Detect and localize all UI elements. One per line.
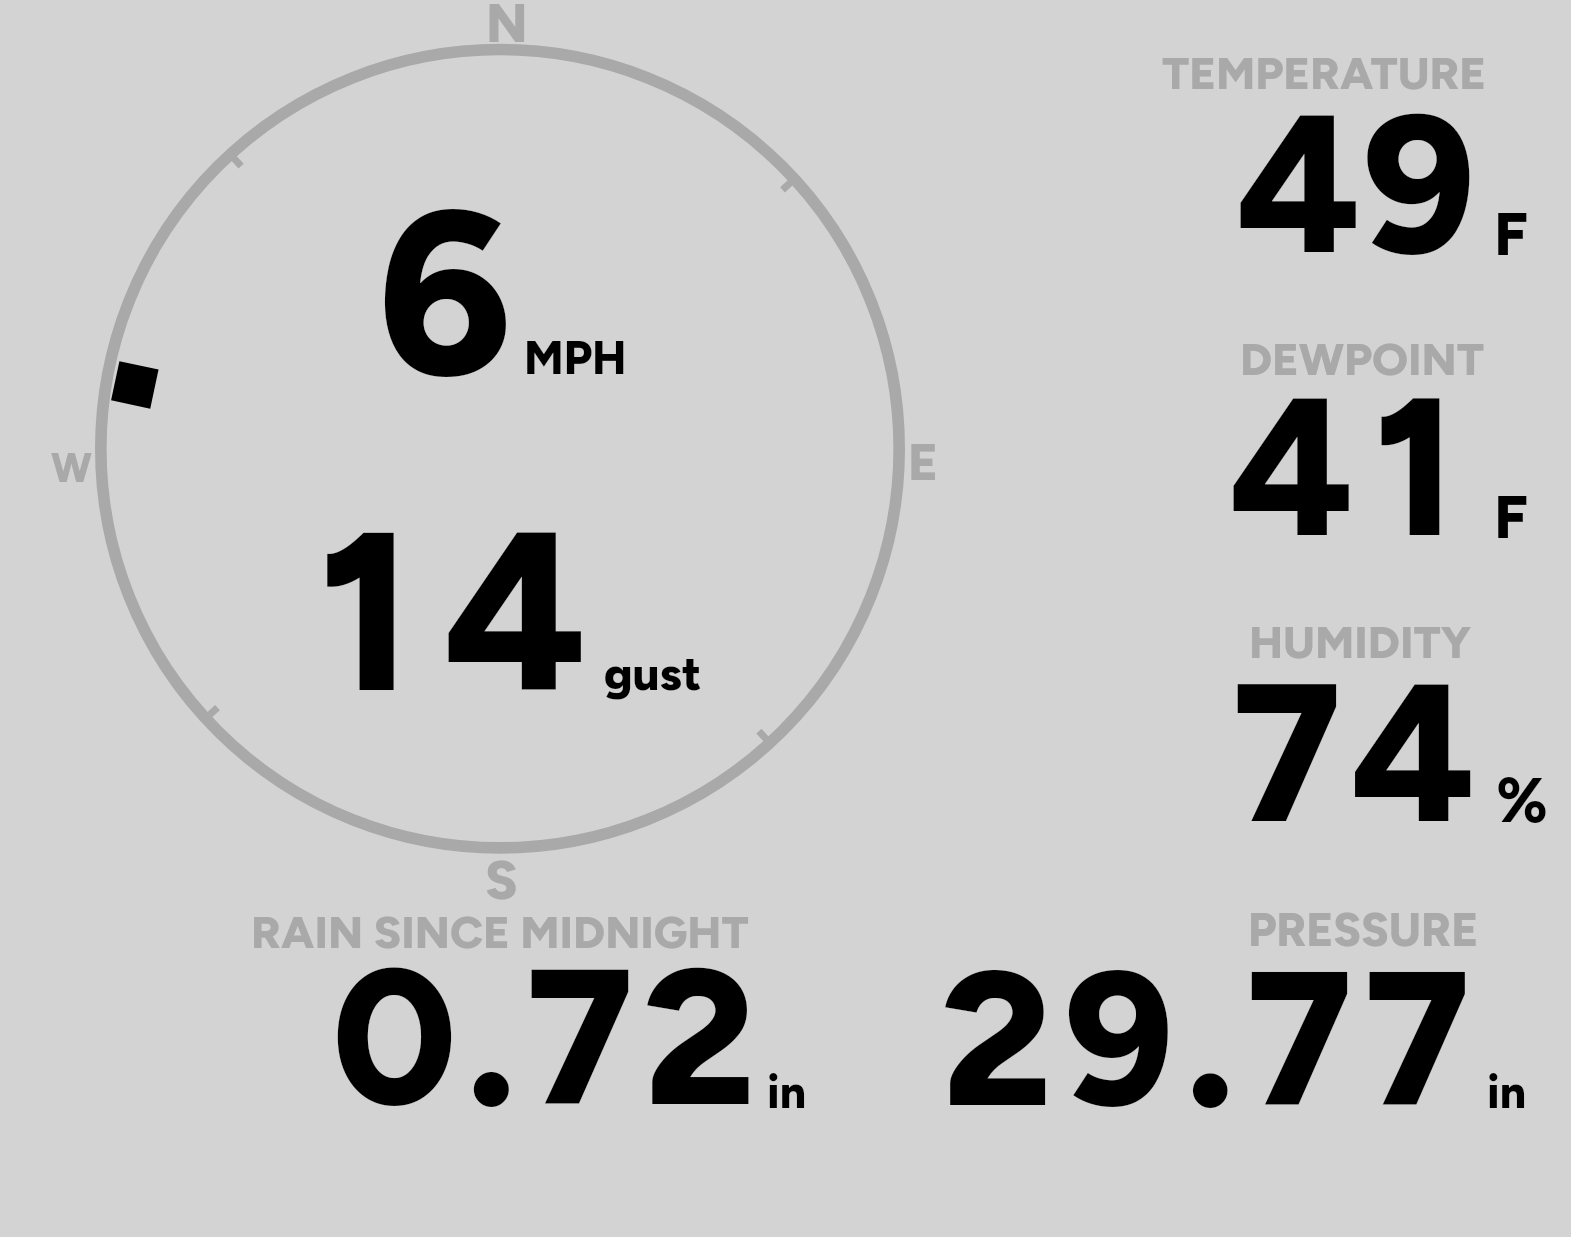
staticText: E [908,432,938,493]
staticText: F [1494,197,1529,270]
staticText: 49 [1237,67,1476,301]
staticText: DEWPOINT [1240,332,1485,387]
staticText: 41 [1230,350,1476,584]
staticText: N [486,0,528,56]
button[interactable]: RAIN SINCE MIDNIGHT 0.72 inches [230,890,830,1130]
button[interactable]: HUMIDITY 74 % [1130,600,1571,900]
staticText: MPH [524,330,627,385]
staticText: HUMIDITY [1249,615,1471,670]
staticText: TEMPERATURE [1162,46,1487,101]
button[interactable]: Wind speed and direction compass [24,0,984,900]
staticText: % [1496,762,1548,838]
staticText: gust [604,645,702,701]
staticText: 14 [318,477,619,746]
staticText: RAIN SINCE MIDNIGHT [251,905,749,960]
staticText: in [767,1064,807,1119]
staticText: S [485,848,518,913]
staticText: PRESSURE [1248,902,1479,957]
button[interactable]: PRESSURE 29.77 inches [900,890,1560,1130]
staticText: F [1494,480,1529,553]
staticText: 6 [377,154,513,432]
staticText: 29.77 [941,925,1482,1152]
button[interactable]: DEWPOINT 41 F [1130,318,1571,618]
staticText: 74 [1232,636,1486,870]
staticText: 0.72 [332,922,765,1152]
staticText: W [51,443,92,492]
button[interactable]: TEMPERATURE 49 F [1130,20,1571,320]
staticText: in [1487,1064,1527,1119]
